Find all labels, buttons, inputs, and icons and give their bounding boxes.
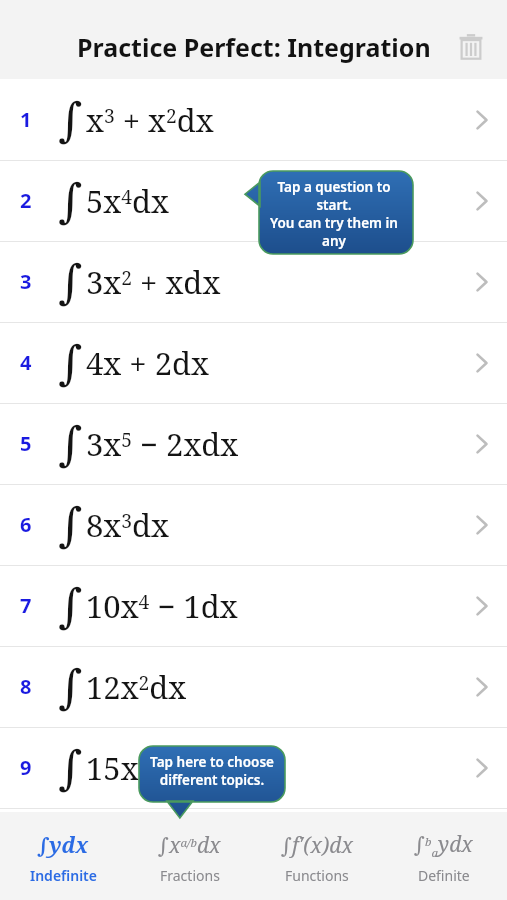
staticText: ∫ [58, 174, 83, 228]
staticText: ∫f′(x)dx [281, 831, 353, 860]
staticText: ∫ [58, 255, 83, 309]
staticText: 10x4 − 1dx [86, 585, 238, 627]
staticText: ∫ [58, 741, 83, 795]
staticText: 8 [20, 673, 32, 700]
staticText: Tap a question to start. [261, 178, 407, 214]
button[interactable]: 4 [0, 322, 507, 403]
staticText: Definite [418, 866, 470, 885]
staticText: 4 [20, 349, 32, 376]
staticText: ∫ [58, 93, 83, 147]
staticText: Indefinite [30, 866, 97, 885]
staticText: ∫ [58, 498, 83, 552]
staticText: 12x2dx [86, 666, 187, 708]
button[interactable]: 6 [0, 484, 507, 565]
button[interactable]: Delete [449, 25, 493, 69]
staticText: 5 [20, 430, 32, 457]
staticText: ∫ydx [37, 831, 89, 860]
staticText: Functions [285, 866, 349, 885]
button[interactable]: ∫xa/bdx [126, 812, 253, 900]
staticText: Tap here to choose [145, 753, 279, 771]
button[interactable]: 7 [0, 565, 507, 646]
button[interactable]: ∫baydx [380, 812, 507, 900]
button[interactable]: ∫ydx [0, 812, 126, 900]
button[interactable]: 5 [0, 403, 507, 484]
staticText: 2 [20, 187, 32, 214]
staticText: ∫baydx [414, 830, 473, 860]
button[interactable]: 2 [0, 160, 507, 241]
staticText: 15x2 − 3dx [86, 747, 238, 789]
button[interactable]: ∫f′(x)dx [253, 812, 380, 900]
staticText: 5x4dx [86, 180, 169, 222]
staticText: Fractions [160, 866, 220, 885]
staticText: ∫ [58, 579, 83, 633]
staticText: 7 [20, 592, 32, 619]
staticText: You can try them in any [261, 214, 407, 250]
staticText: 3x5 − 2xdx [86, 423, 239, 465]
staticText: x3 + x2dx [86, 99, 214, 141]
staticText: different topics. [145, 771, 279, 789]
staticText: 8x3dx [86, 504, 169, 546]
staticText: ∫xa/bdx [158, 831, 221, 860]
button[interactable]: 1 [0, 79, 507, 160]
button[interactable]: 8 [0, 646, 507, 727]
staticText: 4x + 2dx [86, 342, 209, 384]
staticText: Practice Perfect: Integration [77, 30, 431, 64]
staticText: ∫ [58, 660, 83, 714]
staticText: 1 [20, 106, 32, 133]
staticText: 3 [20, 268, 32, 295]
staticText: ∫ [58, 336, 83, 390]
button[interactable]: 3 [0, 241, 507, 322]
staticText: 9 [20, 754, 32, 781]
staticText: 6 [20, 511, 32, 538]
staticText: ∫ [58, 417, 83, 471]
staticText: 3x2 + xdx [86, 261, 221, 303]
button[interactable]: 9 [0, 727, 507, 808]
